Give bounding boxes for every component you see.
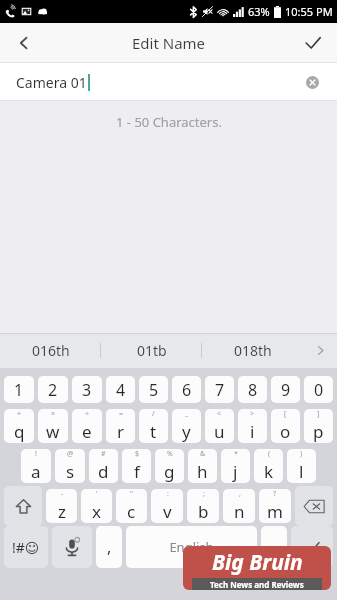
- button[interactable]: :: [151, 489, 183, 523]
- button[interactable]: ): [287, 449, 316, 483]
- button[interactable]: _: [172, 409, 201, 443]
- staticText: m: [267, 500, 283, 523]
- button[interactable]: /: [139, 409, 168, 443]
- button[interactable]: Clear text: [301, 71, 323, 93]
- button[interactable]: >: [238, 409, 267, 443]
- button[interactable]: ;: [187, 489, 219, 523]
- button[interactable]: Done: [291, 526, 333, 568]
- button[interactable]: 2: [38, 376, 68, 403]
- staticText: $: [135, 449, 140, 459]
- button[interactable]: (: [254, 449, 283, 483]
- staticText: d: [98, 460, 109, 483]
- staticText: ÷: [85, 409, 90, 419]
- staticText: ]: [317, 409, 320, 419]
- button[interactable]: 01tb: [101, 333, 202, 368]
- staticText: @: [67, 449, 74, 459]
- button[interactable]: Big Bruin: [183, 546, 331, 590]
- button[interactable]: Confirm: [289, 23, 337, 63]
- button[interactable]: 0: [304, 376, 333, 403]
- staticText: 4: [116, 379, 126, 401]
- staticText: %: [167, 449, 173, 459]
- staticText: p: [313, 420, 324, 443]
- staticText: ": [130, 489, 133, 499]
- button[interactable]: 4: [106, 376, 135, 403]
- button[interactable]: <: [205, 409, 234, 443]
- button[interactable]: Back: [0, 23, 48, 63]
- button[interactable]: ,: [96, 526, 122, 568]
- staticText: 63%: [248, 4, 270, 19]
- button[interactable]: Voice input: [52, 526, 92, 568]
- staticText: Tech News and Reviews: [210, 579, 304, 590]
- button[interactable]: &: [188, 449, 217, 483]
- staticText: #: [101, 449, 106, 459]
- staticText: 9: [281, 379, 291, 401]
- staticText: ': [96, 489, 98, 499]
- button[interactable]: !: [21, 449, 51, 483]
- button[interactable]: #: [89, 449, 118, 483]
- staticText: -: [61, 489, 64, 499]
- staticText: e: [82, 420, 92, 443]
- button[interactable]: @: [55, 449, 85, 483]
- staticText: 10:55 PM: [285, 4, 333, 19]
- staticText: !: [35, 449, 37, 459]
- staticText: z: [58, 500, 66, 523]
- button[interactable]: ,: [223, 489, 255, 523]
- button[interactable]: More suggestions: [303, 333, 337, 368]
- button[interactable]: 018th: [202, 333, 303, 368]
- button[interactable]: 016th: [0, 333, 101, 368]
- button[interactable]: ]: [304, 409, 333, 443]
- button[interactable]: ÷: [72, 409, 102, 443]
- staticText: 6: [182, 379, 192, 401]
- staticText: 01tb: [137, 341, 167, 360]
- button[interactable]: .: [261, 526, 287, 568]
- button[interactable]: ": [116, 489, 147, 523]
- staticText: 5: [149, 379, 159, 401]
- staticText: .: [272, 536, 277, 558]
- staticText: 018th: [234, 341, 272, 360]
- button[interactable]: %: [155, 449, 184, 483]
- button[interactable]: 1: [4, 376, 34, 403]
- button[interactable]: !#☺: [4, 526, 48, 568]
- staticText: g: [164, 460, 175, 483]
- button[interactable]: 3: [72, 376, 102, 403]
- button[interactable]: ': [81, 489, 112, 523]
- staticText: 7: [215, 379, 225, 401]
- staticText: l: [299, 460, 304, 483]
- button[interactable]: 9: [271, 376, 300, 403]
- staticText: [: [284, 409, 287, 419]
- staticText: t: [150, 420, 157, 443]
- button[interactable]: =: [106, 409, 135, 443]
- button[interactable]: Shift: [4, 486, 42, 526]
- staticText: <: [217, 409, 222, 419]
- button[interactable]: Backspace: [295, 486, 333, 526]
- button[interactable]: 5: [139, 376, 168, 403]
- staticText: !#☺: [12, 538, 40, 557]
- staticText: 8: [248, 379, 258, 401]
- staticText: w: [46, 420, 60, 443]
- staticText: 0: [314, 379, 324, 401]
- staticText: (: [268, 449, 271, 459]
- button[interactable]: 7: [205, 376, 234, 403]
- staticText: b: [198, 500, 209, 523]
- staticText: i: [250, 420, 255, 443]
- staticText: _: [185, 409, 189, 419]
- staticText: &: [200, 449, 206, 459]
- button[interactable]: ×: [38, 409, 68, 443]
- staticText: ,: [239, 489, 241, 499]
- staticText: /: [152, 409, 155, 419]
- button[interactable]: +: [4, 409, 34, 443]
- staticText: u: [214, 420, 225, 443]
- button[interactable]: -: [46, 489, 77, 523]
- button[interactable]: ?: [259, 489, 291, 523]
- staticText: y: [182, 420, 191, 443]
- button[interactable]: English: [126, 526, 257, 568]
- staticText: s: [66, 460, 75, 483]
- staticText: x: [92, 500, 101, 523]
- button[interactable]: [: [271, 409, 300, 443]
- staticText: Edit Name: [132, 33, 206, 53]
- button[interactable]: Camera 01: [0, 63, 337, 101]
- button[interactable]: *: [221, 449, 250, 483]
- button[interactable]: 6: [172, 376, 201, 403]
- button[interactable]: 8: [238, 376, 267, 403]
- button[interactable]: $: [122, 449, 151, 483]
